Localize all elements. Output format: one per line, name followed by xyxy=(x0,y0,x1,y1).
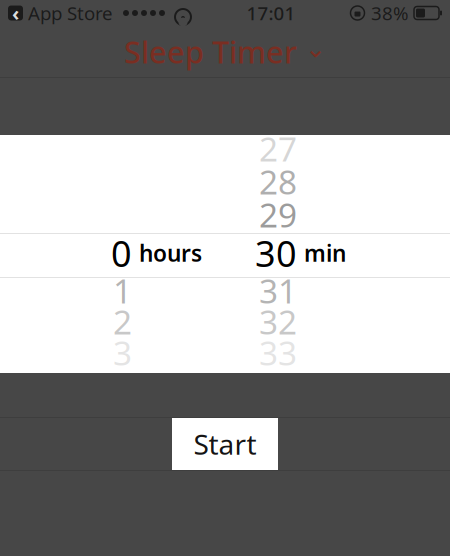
staticText: 2 xyxy=(113,299,132,344)
button[interactable]: Start xyxy=(172,418,278,470)
button[interactable]: Back to App Store xyxy=(8,1,113,25)
staticText: 38% xyxy=(371,1,409,25)
staticText: 33 xyxy=(259,330,297,375)
staticText: ⌄ xyxy=(305,34,326,63)
button[interactable]: Sleep Timer xyxy=(0,26,450,77)
staticText: App Store xyxy=(28,1,113,25)
staticText: hours xyxy=(139,238,202,268)
staticText: 27 xyxy=(259,126,297,171)
staticText: 28 xyxy=(259,159,297,204)
staticText: 0 xyxy=(111,229,132,277)
staticText: Sleep Timer xyxy=(124,31,297,72)
staticText: Start xyxy=(193,425,256,463)
staticText: 1 xyxy=(113,268,132,313)
staticText: 17:01 xyxy=(246,1,295,25)
staticText: 29 xyxy=(259,192,297,237)
staticText: min xyxy=(304,238,346,268)
staticText: 30 xyxy=(255,229,297,277)
staticText: 3 xyxy=(113,330,132,375)
staticText: 31 xyxy=(259,268,297,313)
staticText: 32 xyxy=(259,299,297,344)
staticText: ‹ xyxy=(12,0,19,26)
